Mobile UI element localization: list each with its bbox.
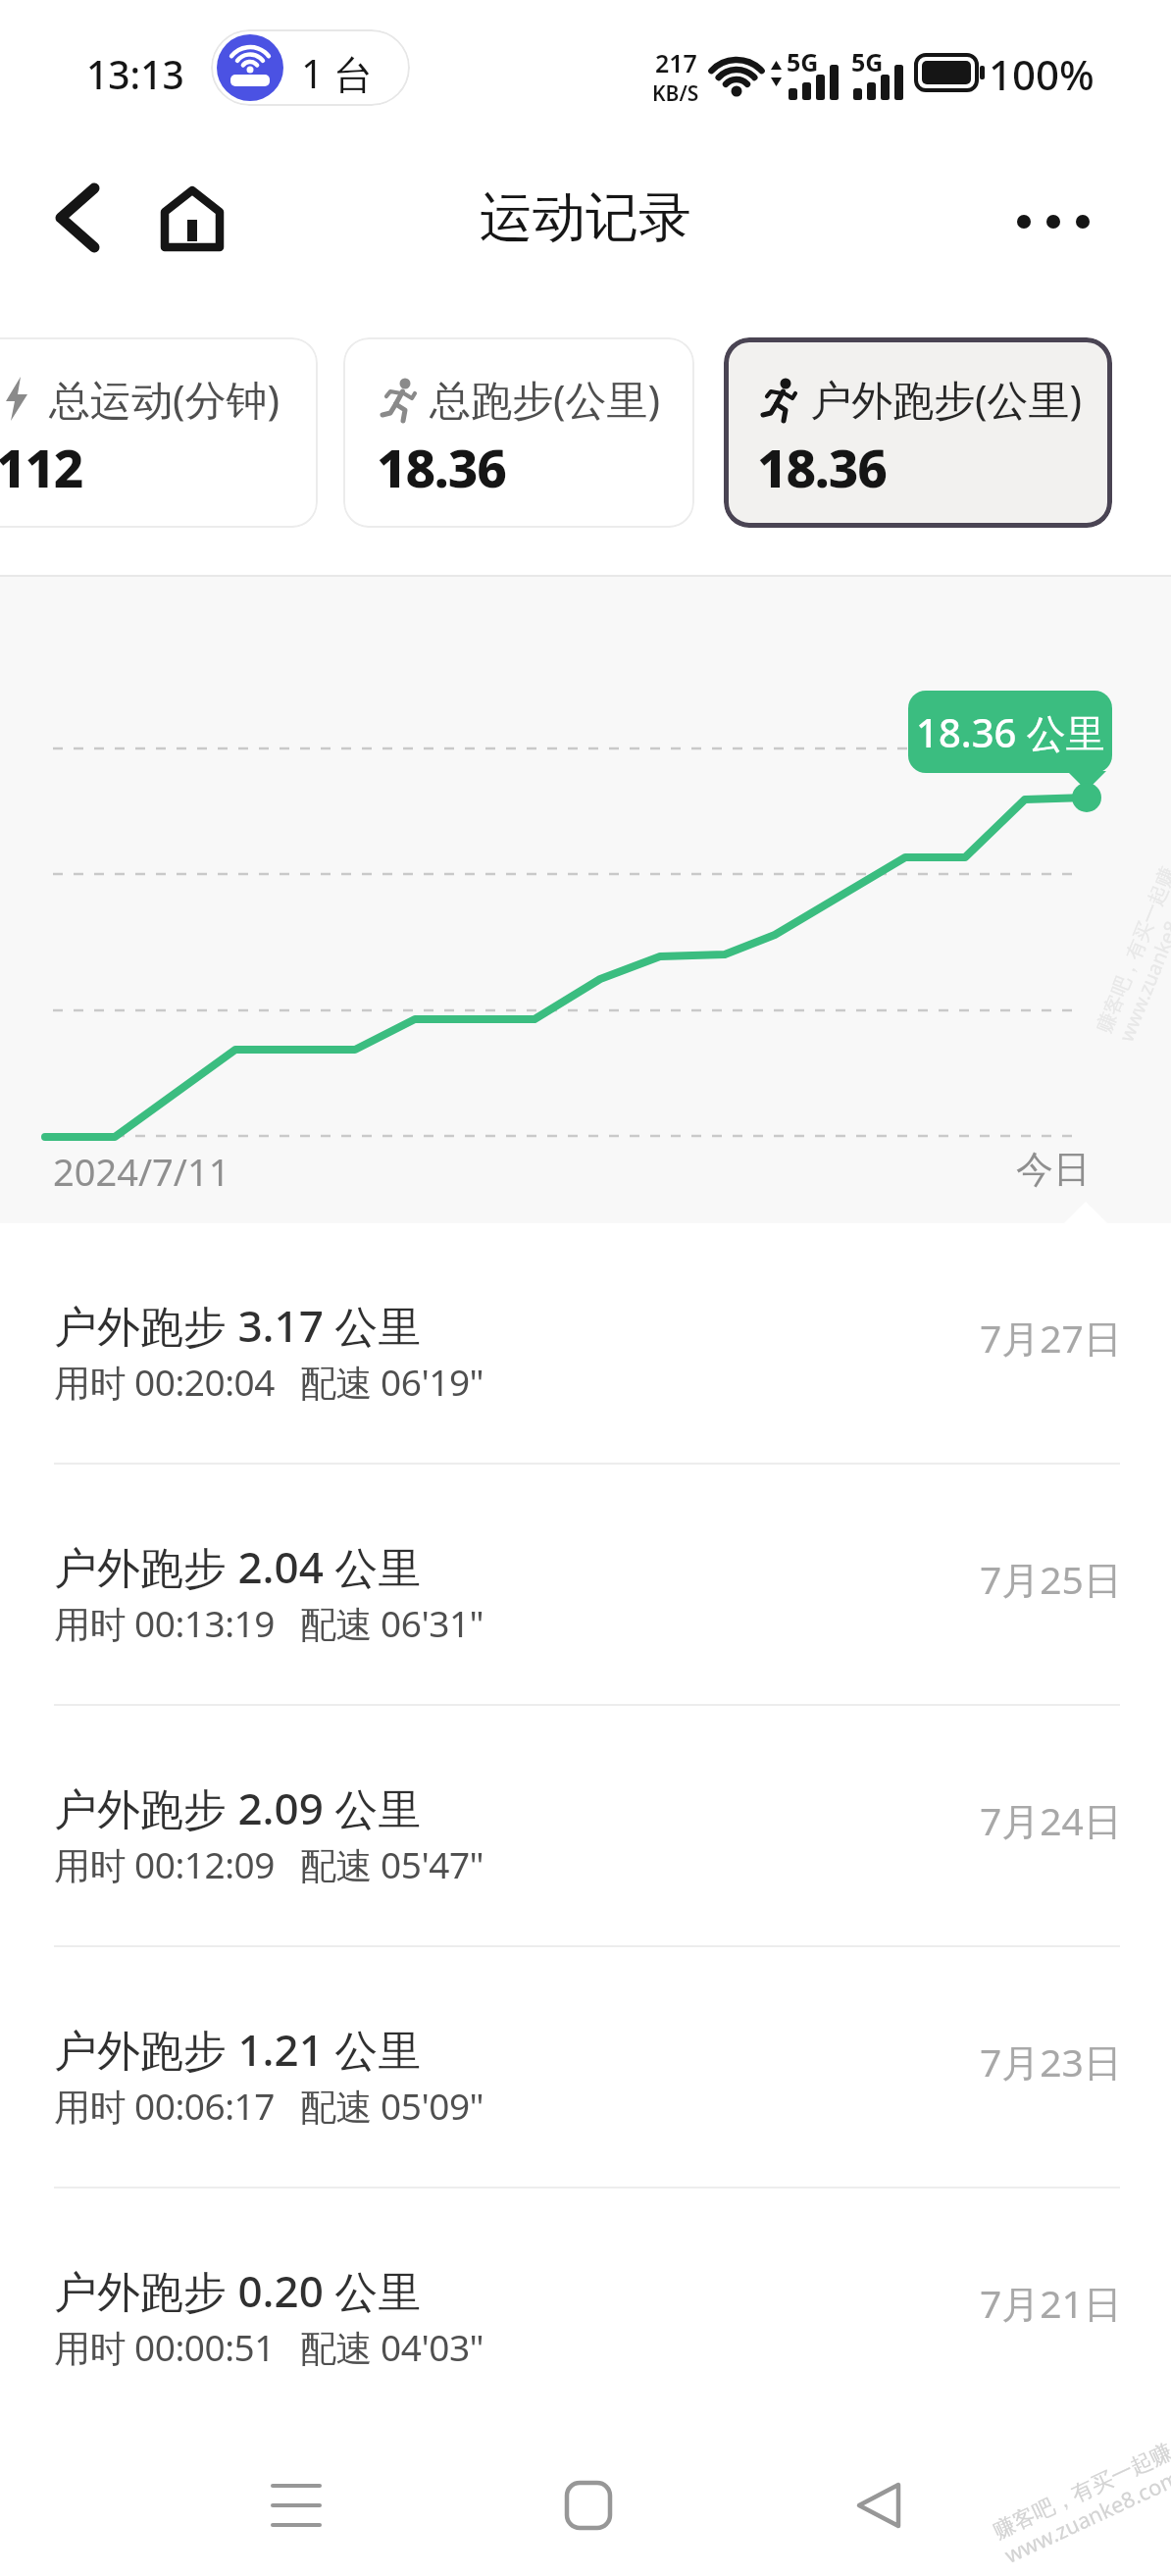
button[interactable] [553,2470,624,2541]
button[interactable]: 户外跑步 0.20 公里 [0,2189,1171,2430]
staticText: 户外跑步 1.21 公里 [54,2020,422,2079]
staticText: 1 台 [301,46,374,100]
staticText: 配速 06'31" [300,1598,484,1648]
staticText: 今日 [1016,1146,1091,1193]
staticText: 配速 05'47" [300,1839,484,1889]
staticText: 赚客吧，有买一起赚 www.zuanke8.com [1092,863,1171,1046]
staticText: 户外跑步 3.17 公里 [54,1296,422,1355]
staticText: 运动记录 [0,184,1171,251]
staticText: 总跑步(公里) [430,371,661,427]
staticText: 13:13 [86,48,184,100]
staticText: 用时 00:06:17 [54,2081,275,2131]
button[interactable] [261,2472,331,2539]
staticText: 用时 00:12:09 [54,1839,275,1889]
staticText: 用时 00:00:51 [54,2322,275,2372]
staticText: 赚客吧，有买一起赚！ www.zuanke8.com [989,2429,1171,2570]
staticText: 18.36 [757,432,887,502]
button[interactable]: 户外跑步 1.21 公里 [0,1947,1171,2189]
button[interactable]: 户外跑步 2.04 公里 [0,1465,1171,1706]
button[interactable]: 总跑步(公里) [343,337,694,528]
staticText: 户外跑步 2.09 公里 [54,1778,422,1837]
staticText: KB/S [652,79,699,108]
staticText: 户外跑步(公里) [810,371,1083,427]
staticText: 用时 00:13:19 [54,1598,275,1648]
staticText: 112 [0,432,83,502]
staticText: 100% [989,46,1095,102]
staticText: 户外跑步 0.20 公里 [54,2261,422,2320]
button[interactable]: 总运动(分钟) [0,337,318,528]
staticText: 配速 06'19" [300,1357,484,1407]
staticText: 217 [655,46,697,79]
staticText: 5G [851,45,884,78]
staticText: 5G [787,45,819,78]
staticText: 7月23日 [980,2035,1122,2087]
staticText: 总运动(分钟) [49,371,280,427]
button[interactable] [43,173,114,263]
button[interactable]: 1 台 [211,29,410,106]
button[interactable]: 户外跑步 3.17 公里 [0,1223,1171,1465]
staticText: 2024/7/11 [53,1146,230,1197]
staticText: 7月27日 [980,1312,1122,1364]
button[interactable]: 户外跑步(公里) [724,337,1112,528]
staticText: 7月24日 [980,1794,1122,1846]
staticText: 用时 00:20:04 [54,1357,275,1407]
staticText: 户外跑步 2.04 公里 [54,1537,422,1596]
button[interactable] [155,179,229,257]
staticText: 18.36 [377,432,506,502]
staticText: 7月25日 [980,1553,1122,1605]
staticText: 7月21日 [980,2277,1122,2329]
staticText: 配速 05'09" [300,2081,484,2131]
button[interactable] [1010,198,1096,245]
staticText: 配速 04'03" [300,2322,484,2372]
button[interactable] [841,2470,912,2541]
button[interactable]: 户外跑步 2.09 公里 [0,1706,1171,1947]
staticText: 18.36 公里 [916,705,1105,759]
